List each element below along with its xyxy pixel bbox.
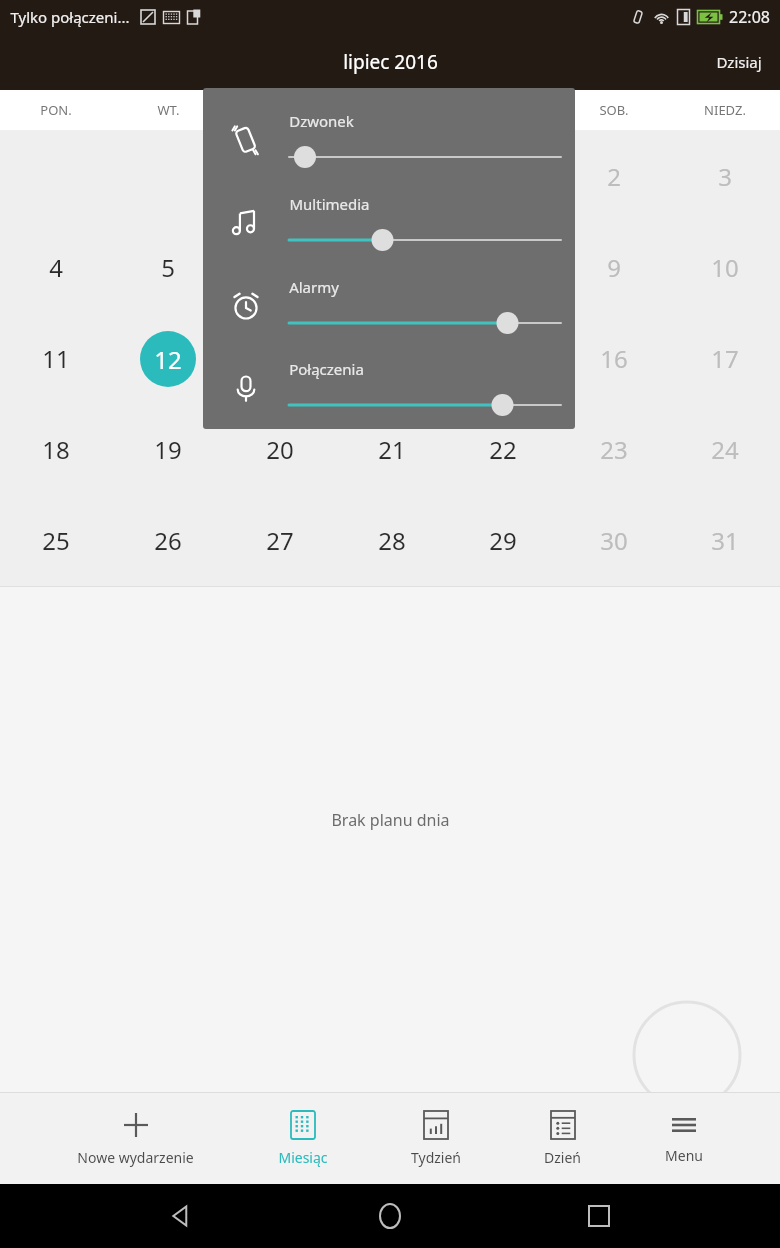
button[interactable]: 6 [224,222,336,313]
staticText: 17 [711,342,739,375]
staticText: 9 [607,251,621,284]
staticText: 2 [607,160,621,193]
button[interactable]: Nowe wydarzenie [71,1102,200,1175]
button[interactable] [289,228,561,252]
staticText: NIEDZ. [704,101,746,119]
button[interactable]: 30 [558,495,669,586]
button[interactable]: 20 [224,404,336,495]
staticText: 18 [42,433,70,466]
button[interactable]: 23 [558,404,669,495]
staticText: 25 [42,524,70,557]
button[interactable]: 3 [669,130,780,222]
staticText: 30 [600,524,628,557]
staticText: 19 [154,433,182,466]
button[interactable] [289,145,561,169]
staticText: 27 [266,524,294,557]
staticText: PON. [40,101,72,119]
button[interactable]: 31 [669,495,780,586]
button[interactable]: Tydzień [405,1102,467,1175]
staticText: 23 [600,433,628,466]
button[interactable]: 8 [447,222,558,313]
staticText: Połączenia [289,359,364,379]
button[interactable]: 4 [0,222,112,313]
button[interactable]: Home [362,1188,418,1244]
button[interactable]: 7 [336,222,447,313]
button[interactable]: Dzisiaj [698,38,780,86]
button[interactable]: Recents [571,1188,627,1244]
button[interactable] [336,130,447,222]
button[interactable] [289,311,561,335]
staticText: SOB. [599,101,629,119]
staticText: Dzisiaj [716,52,762,72]
button[interactable]: Miesiąc [272,1102,334,1175]
button[interactable]: 18 [0,404,112,495]
button[interactable]: 25 [0,495,112,586]
staticText: Dzwonek [289,111,354,131]
staticText: 11 [42,342,70,375]
button[interactable]: 22 [447,404,558,495]
staticText: Nowe wydarzenie [77,1148,194,1167]
button[interactable]: 28 [336,495,447,586]
staticText: 21 [378,433,406,466]
button[interactable]: 15 [447,313,558,404]
button[interactable]: 10 [669,222,780,313]
button[interactable]: 2 [558,130,669,222]
button[interactable]: 27 [224,495,336,586]
other: Połączenia [230,372,262,404]
staticText: 22 [489,433,517,466]
staticText: 10 [711,251,739,284]
staticText: WT. [157,101,180,119]
button[interactable]: 29 [447,495,558,586]
button[interactable]: 11 [0,313,112,404]
staticText: 28 [378,524,406,557]
staticText: Miesiąc [278,1148,328,1167]
staticText: 20 [266,433,294,466]
button[interactable] [224,130,336,222]
button[interactable]: 26 [112,495,224,586]
other: Dzwonek [229,123,263,157]
button[interactable]: 24 [669,404,780,495]
button[interactable] [289,393,561,417]
button[interactable]: Menu [659,1104,709,1173]
staticText: 22:08 [729,6,770,28]
staticText: 26 [154,524,182,557]
button[interactable]: 14 [336,313,447,404]
staticText: 4 [49,251,63,284]
staticText: 29 [489,524,517,557]
staticText: 31 [711,524,739,557]
button[interactable]: 9 [558,222,669,313]
button[interactable]: Dzień [538,1102,587,1175]
staticText: 12 [154,343,182,376]
staticText: Tydzień [411,1148,461,1167]
staticText: Tylko połączeni... [10,7,130,27]
button[interactable]: 17 [669,313,780,404]
button[interactable]: 12 [112,313,224,404]
button[interactable]: 1 [447,130,558,222]
staticText: 3 [718,160,732,193]
staticText: Dzień [544,1148,581,1167]
button[interactable]: 19 [112,404,224,495]
staticText: Brak planu dnia [331,809,450,831]
other: Alarmy [230,290,262,322]
staticText: Menu [665,1146,703,1165]
staticText: 13 [266,342,294,375]
button[interactable] [112,130,224,222]
staticText: Multimedia [289,194,370,214]
button[interactable]: Back [153,1188,209,1244]
button[interactable]: 21 [336,404,447,495]
button[interactable]: 16 [558,313,669,404]
staticText: 16 [600,342,628,375]
staticText: 5 [161,251,175,284]
button[interactable]: 5 [112,222,224,313]
staticText: Alarmy [289,277,339,297]
button[interactable]: 13 [224,313,336,404]
